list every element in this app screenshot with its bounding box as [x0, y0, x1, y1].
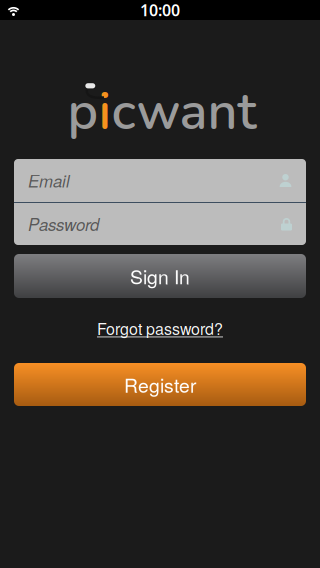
button[interactable]: Email — [14, 159, 306, 202]
staticText: Register — [124, 371, 196, 398]
staticText: p — [67, 76, 98, 147]
staticText: Password — [28, 212, 99, 236]
staticText: 10:00 — [140, 0, 180, 21]
staticText: Email — [28, 169, 70, 192]
staticText: i — [98, 76, 111, 147]
button[interactable]: Register — [14, 363, 306, 406]
button[interactable]: Forgot password? — [97, 316, 223, 340]
button[interactable]: Password — [14, 203, 306, 245]
staticText: cwant — [111, 76, 256, 147]
button[interactable]: Sign In — [14, 254, 306, 298]
staticText: Forgot password? — [97, 316, 223, 339]
staticText: Sign In — [130, 262, 190, 290]
